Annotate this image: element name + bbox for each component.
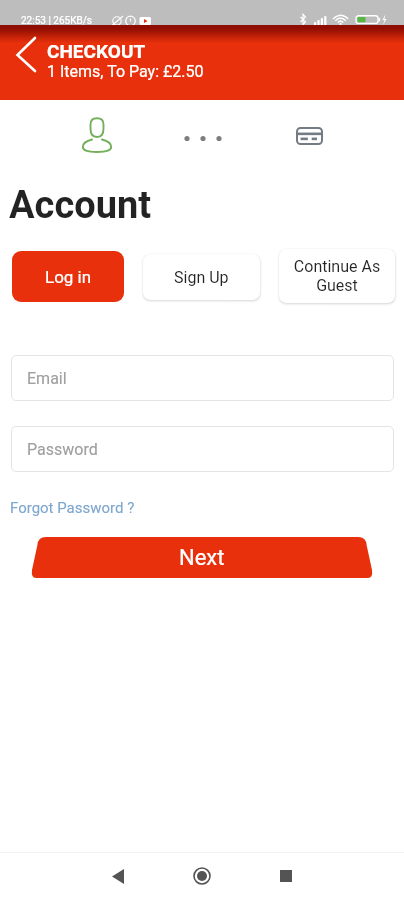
button[interactable]: Password xyxy=(11,426,394,472)
button[interactable]: Sign Up xyxy=(143,254,260,300)
staticText: 22:53 | 265KB/s xyxy=(21,15,92,27)
staticText: Next xyxy=(179,545,225,571)
staticText: Continue As Guest xyxy=(287,257,387,295)
button[interactable]: Email xyxy=(11,355,394,401)
button[interactable]: More options xyxy=(174,114,222,162)
button[interactable]: Home xyxy=(178,852,226,900)
staticText: Account xyxy=(9,183,152,228)
staticText: Log in xyxy=(45,267,92,287)
button[interactable]: Forgot Password ? xyxy=(10,499,135,517)
button[interactable]: Back xyxy=(94,852,142,900)
staticText: 1 Items, To Pay: £2.50 xyxy=(47,62,204,81)
button[interactable]: Log in xyxy=(12,251,124,302)
button[interactable]: Account xyxy=(74,111,122,159)
staticText: Password xyxy=(27,440,98,459)
staticText: CHECKOUT xyxy=(47,40,146,62)
staticText: Email xyxy=(27,369,67,388)
button[interactable]: Continue As Guest xyxy=(279,249,395,303)
button[interactable] xyxy=(0,532,404,584)
button[interactable]: Recent apps xyxy=(262,852,310,900)
button[interactable]: Back xyxy=(8,32,44,76)
staticText: Sign Up xyxy=(174,268,229,287)
button[interactable]: Payment xyxy=(285,112,333,160)
